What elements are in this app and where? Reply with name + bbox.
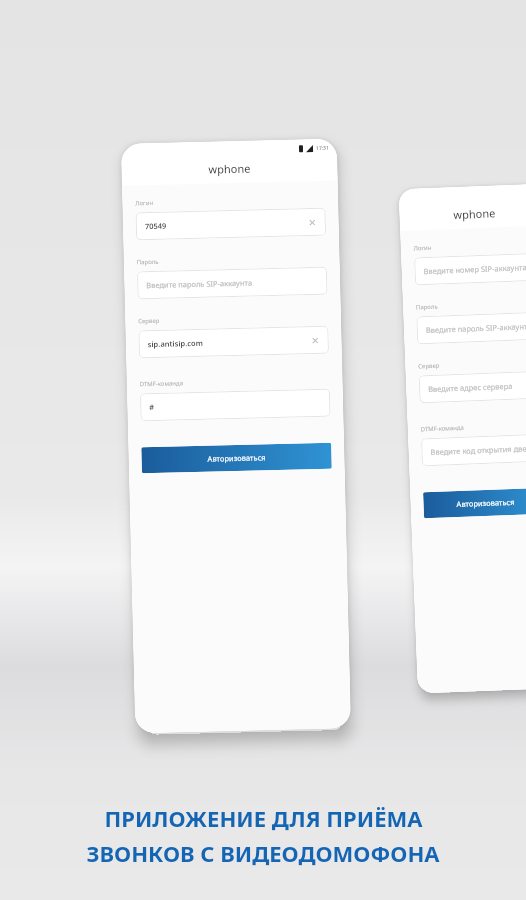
button[interactable]: 17:31 (121, 138, 351, 733)
staticText: Введите код открытия двери (430, 443, 526, 457)
staticText: DTMF-команда (140, 379, 184, 388)
button[interactable]: Введите код открытия двери (421, 434, 526, 466)
staticText: Введите пароль SIP-аккаунта (426, 321, 526, 335)
staticText: 70549 (145, 217, 307, 231)
staticText: Пароль (137, 258, 159, 266)
button[interactable]: Введите пароль SIP-аккаунта (137, 267, 327, 299)
button[interactable]: Clear (310, 335, 320, 345)
staticText: Введите пароль SIP-аккаунта (146, 276, 318, 290)
staticText: Авторизоваться (207, 452, 266, 464)
staticText: ПРИЛОЖЕНИЕ ДЛЯ ПРИЁМА (104, 803, 423, 833)
staticText: Введите адрес сервера (428, 380, 526, 394)
button[interactable]: # (140, 389, 330, 421)
staticText: # (149, 398, 321, 412)
button[interactable]: Введите номер SIP-аккаунта (414, 253, 526, 285)
staticText: 17:31 (316, 145, 329, 152)
button[interactable]: Введите пароль SIP-аккаунта (416, 312, 526, 344)
button[interactable]: wphone (398, 183, 526, 694)
staticText: Сервер (418, 362, 440, 370)
staticText: sip.antisip.com (148, 335, 310, 349)
staticText: wphone (208, 161, 251, 177)
button[interactable]: sip.antisip.com (138, 326, 329, 358)
button[interactable]: Авторизоваться (423, 488, 526, 518)
staticText: ЗВОНКОВ С ВИДЕОДОМОФОНА (86, 838, 440, 868)
staticText: Авторизоваться (456, 497, 515, 509)
staticText: Логин (413, 244, 432, 252)
staticText: Логин (135, 199, 153, 207)
staticText: Введите номер SIP-аккаунта (423, 262, 526, 276)
staticText: wphone (453, 205, 496, 222)
staticText: Пароль (416, 303, 438, 311)
button[interactable]: Введите адрес сервера (418, 371, 526, 403)
button[interactable]: Clear (307, 217, 317, 227)
staticText: DTMF-команда (420, 424, 465, 433)
button[interactable]: Авторизоваться (141, 443, 332, 473)
button[interactable]: 70549 (135, 208, 326, 240)
staticText: Сервер (138, 317, 160, 325)
